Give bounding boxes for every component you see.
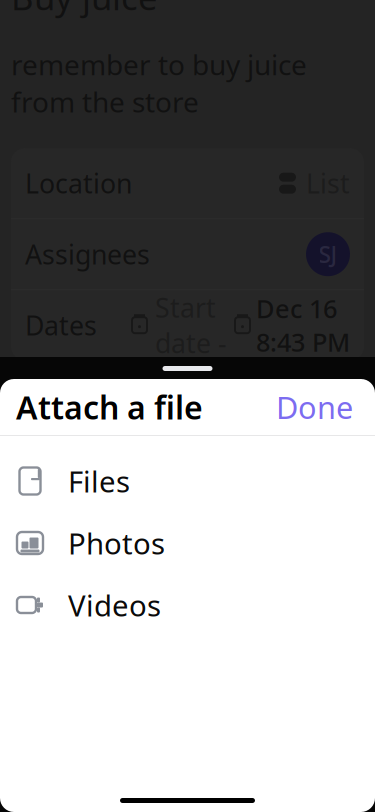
staticText: SJ <box>318 239 337 269</box>
staticText: Videos <box>68 585 161 624</box>
staticText: Assignees <box>25 236 150 272</box>
button[interactable]: Done <box>270 377 359 437</box>
staticText: List <box>306 165 350 201</box>
staticText: Attach a file <box>16 386 203 428</box>
staticText: Dates <box>25 307 97 343</box>
button[interactable]: Photos <box>0 512 375 574</box>
staticText: Done <box>276 387 353 427</box>
staticText: Add Subtask <box>75 422 230 458</box>
staticText: 8:43 PM <box>256 325 350 359</box>
staticText: Buy juice <box>11 0 158 20</box>
staticText: Start date - <box>155 290 227 361</box>
staticText: Files <box>68 461 130 500</box>
staticText: Dec 16 <box>256 292 337 325</box>
staticText: remember to buy juice from the store <box>11 46 307 120</box>
button[interactable]: Files <box>0 450 375 512</box>
button[interactable]: Videos <box>0 574 375 636</box>
staticText: Photos <box>68 523 165 562</box>
staticText: Location <box>25 165 132 201</box>
